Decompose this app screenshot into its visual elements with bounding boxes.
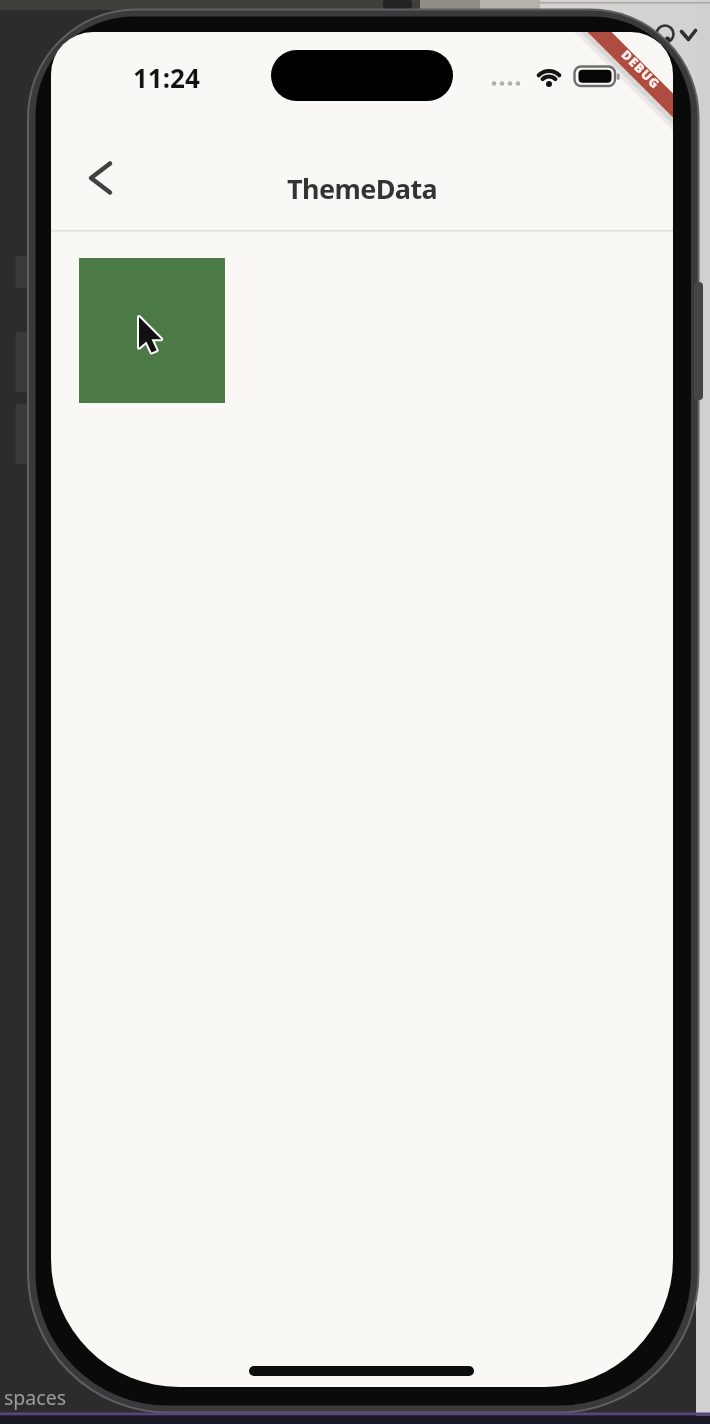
staticText: ThemeData	[287, 170, 438, 207]
staticText: spaces	[4, 1384, 66, 1411]
button[interactable]	[79, 258, 225, 403]
button[interactable]	[69, 144, 135, 210]
staticText: DEBUG	[618, 46, 664, 93]
staticText: 11:24	[133, 60, 200, 95]
